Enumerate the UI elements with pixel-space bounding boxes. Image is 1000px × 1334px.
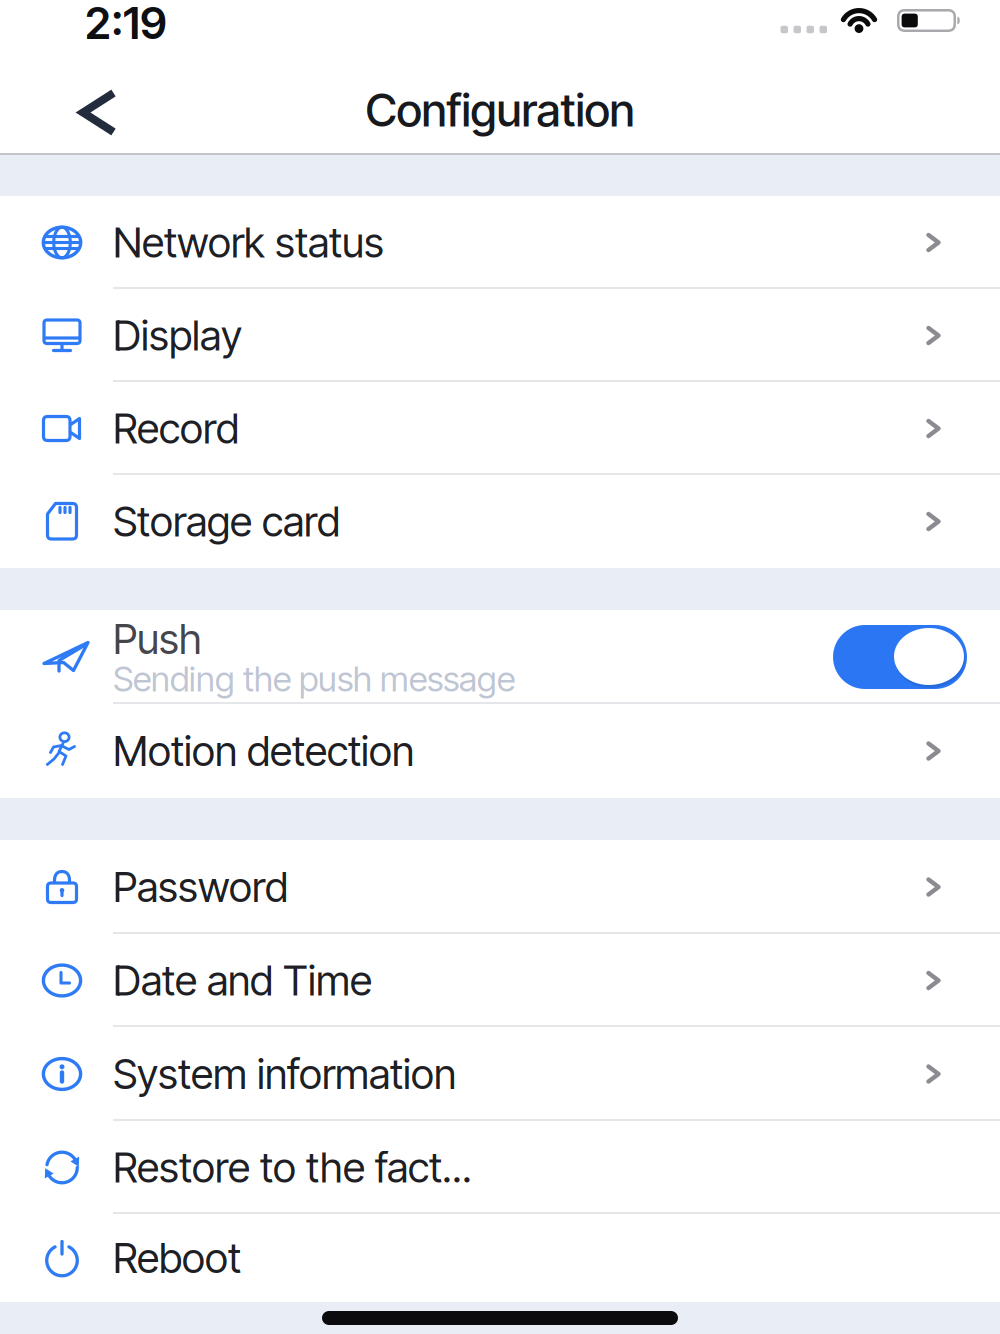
staticText: Display	[113, 310, 242, 360]
button[interactable]: Network status	[0, 196, 1000, 289]
staticText: 2:19	[85, 0, 167, 50]
staticText: System information	[113, 1049, 456, 1099]
staticText: Storage card	[113, 496, 340, 546]
button[interactable]: Push	[833, 625, 967, 689]
staticText: Date and Time	[113, 955, 372, 1005]
staticText: Push	[113, 614, 202, 664]
button[interactable]: Storage card	[0, 475, 1000, 568]
staticText: Network status	[113, 217, 384, 267]
staticText: Restore to the fact...	[113, 1142, 472, 1192]
button[interactable]: Reboot	[0, 1214, 1000, 1302]
staticText: Sending the push message	[113, 658, 515, 700]
button[interactable]: Record	[0, 382, 1000, 475]
button[interactable]: Date and Time	[0, 934, 1000, 1027]
button[interactable]: Back	[0, 90, 117, 134]
button[interactable]: Restore to the fact...	[0, 1121, 1000, 1214]
button[interactable]: Motion detection	[0, 704, 1000, 798]
staticText: Record	[113, 403, 239, 453]
button[interactable]: System information	[0, 1027, 1000, 1121]
staticText: Reboot	[113, 1233, 241, 1283]
staticText: Motion detection	[113, 726, 414, 776]
button[interactable]: Password	[0, 840, 1000, 934]
staticText: Password	[113, 862, 288, 912]
staticText: Configuration	[365, 83, 634, 137]
button[interactable]: Display	[0, 289, 1000, 382]
